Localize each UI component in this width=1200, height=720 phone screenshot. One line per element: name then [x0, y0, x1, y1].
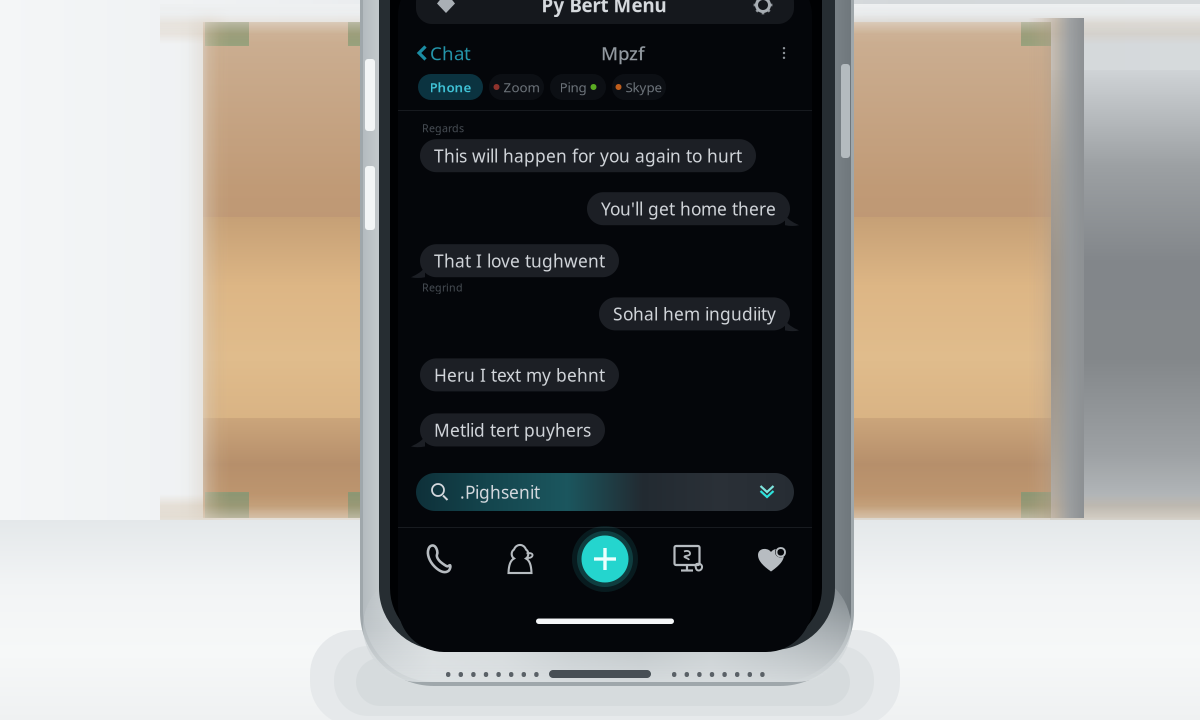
button[interactable]: Screen share	[648, 528, 730, 590]
button[interactable]: Contacts	[480, 528, 562, 590]
staticText: Ping	[559, 78, 586, 96]
staticText: Metlid tert puyhers	[434, 418, 591, 441]
button[interactable]: Zoom	[489, 74, 544, 100]
button[interactable]: Badge	[436, 0, 456, 16]
staticText: Sohal hem ingudiity	[613, 302, 776, 325]
staticText: Zoom	[503, 78, 539, 96]
staticText: Regards	[422, 121, 464, 135]
button[interactable]: Settings	[752, 0, 774, 16]
button[interactable]: .Pighsenit	[416, 473, 794, 511]
staticText: You'll get home there	[601, 197, 776, 220]
staticText: Phone	[429, 78, 471, 96]
button[interactable]: New message	[562, 528, 648, 590]
button[interactable]: Call	[398, 528, 480, 590]
button[interactable]: Chat	[417, 35, 471, 71]
staticText: This will happen for you again to hurt	[434, 144, 742, 167]
staticText: .Pighsenit	[460, 480, 540, 503]
button[interactable]: More options	[775, 42, 793, 64]
staticText: That I love tughwent	[434, 249, 605, 272]
staticText: Chat	[430, 41, 471, 65]
staticText: Py Bert Menu	[541, 0, 666, 17]
button[interactable]: Ping	[550, 74, 606, 100]
staticText: Skype	[625, 78, 662, 96]
button[interactable]: Phone	[418, 74, 483, 100]
staticText: Mpzf	[601, 41, 645, 65]
staticText: Heru I text my behnt	[434, 363, 605, 386]
button[interactable]: Favourites	[730, 528, 812, 590]
button[interactable]: Skype	[612, 74, 666, 100]
staticText: Regrind	[422, 280, 463, 294]
